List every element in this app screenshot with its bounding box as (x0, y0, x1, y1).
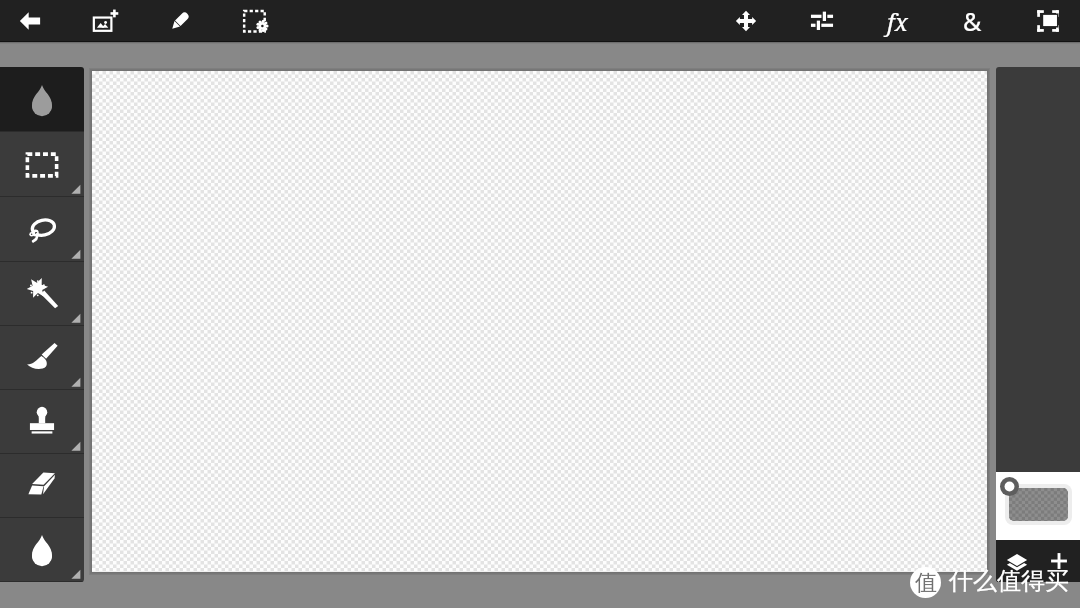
button[interactable]: Move (719, 0, 773, 42)
button[interactable]: Effects (870, 0, 924, 42)
staticText: & (963, 4, 982, 38)
button[interactable]: Layer 1 (996, 472, 1080, 540)
button[interactable]: Draw (153, 0, 207, 42)
button[interactable]: Clone stamp (0, 390, 84, 454)
button[interactable]: Fit to screen (1021, 0, 1075, 42)
button[interactable]: Add image (76, 0, 130, 42)
staticText: 什么值得买 (949, 566, 1069, 596)
button[interactable]: Lasso select (0, 197, 84, 262)
staticText: fx (887, 5, 908, 38)
button[interactable]: Eraser (0, 454, 84, 518)
button[interactable]: Add layer (1041, 543, 1077, 579)
button[interactable]: Rectangle select (0, 132, 84, 197)
button[interactable]: Blend (945, 0, 999, 42)
button[interactable]: Back (3, 0, 57, 42)
button[interactable]: Fill (0, 518, 84, 582)
button[interactable]: Color picker (0, 67, 84, 132)
staticText: 值 (915, 569, 937, 597)
button[interactable]: Adjust (795, 0, 849, 42)
button[interactable]: Brush (0, 326, 84, 390)
button[interactable]: Layers (999, 542, 1035, 578)
button[interactable]: Selection settings (229, 0, 283, 42)
button[interactable]: Magic wand (0, 262, 84, 326)
